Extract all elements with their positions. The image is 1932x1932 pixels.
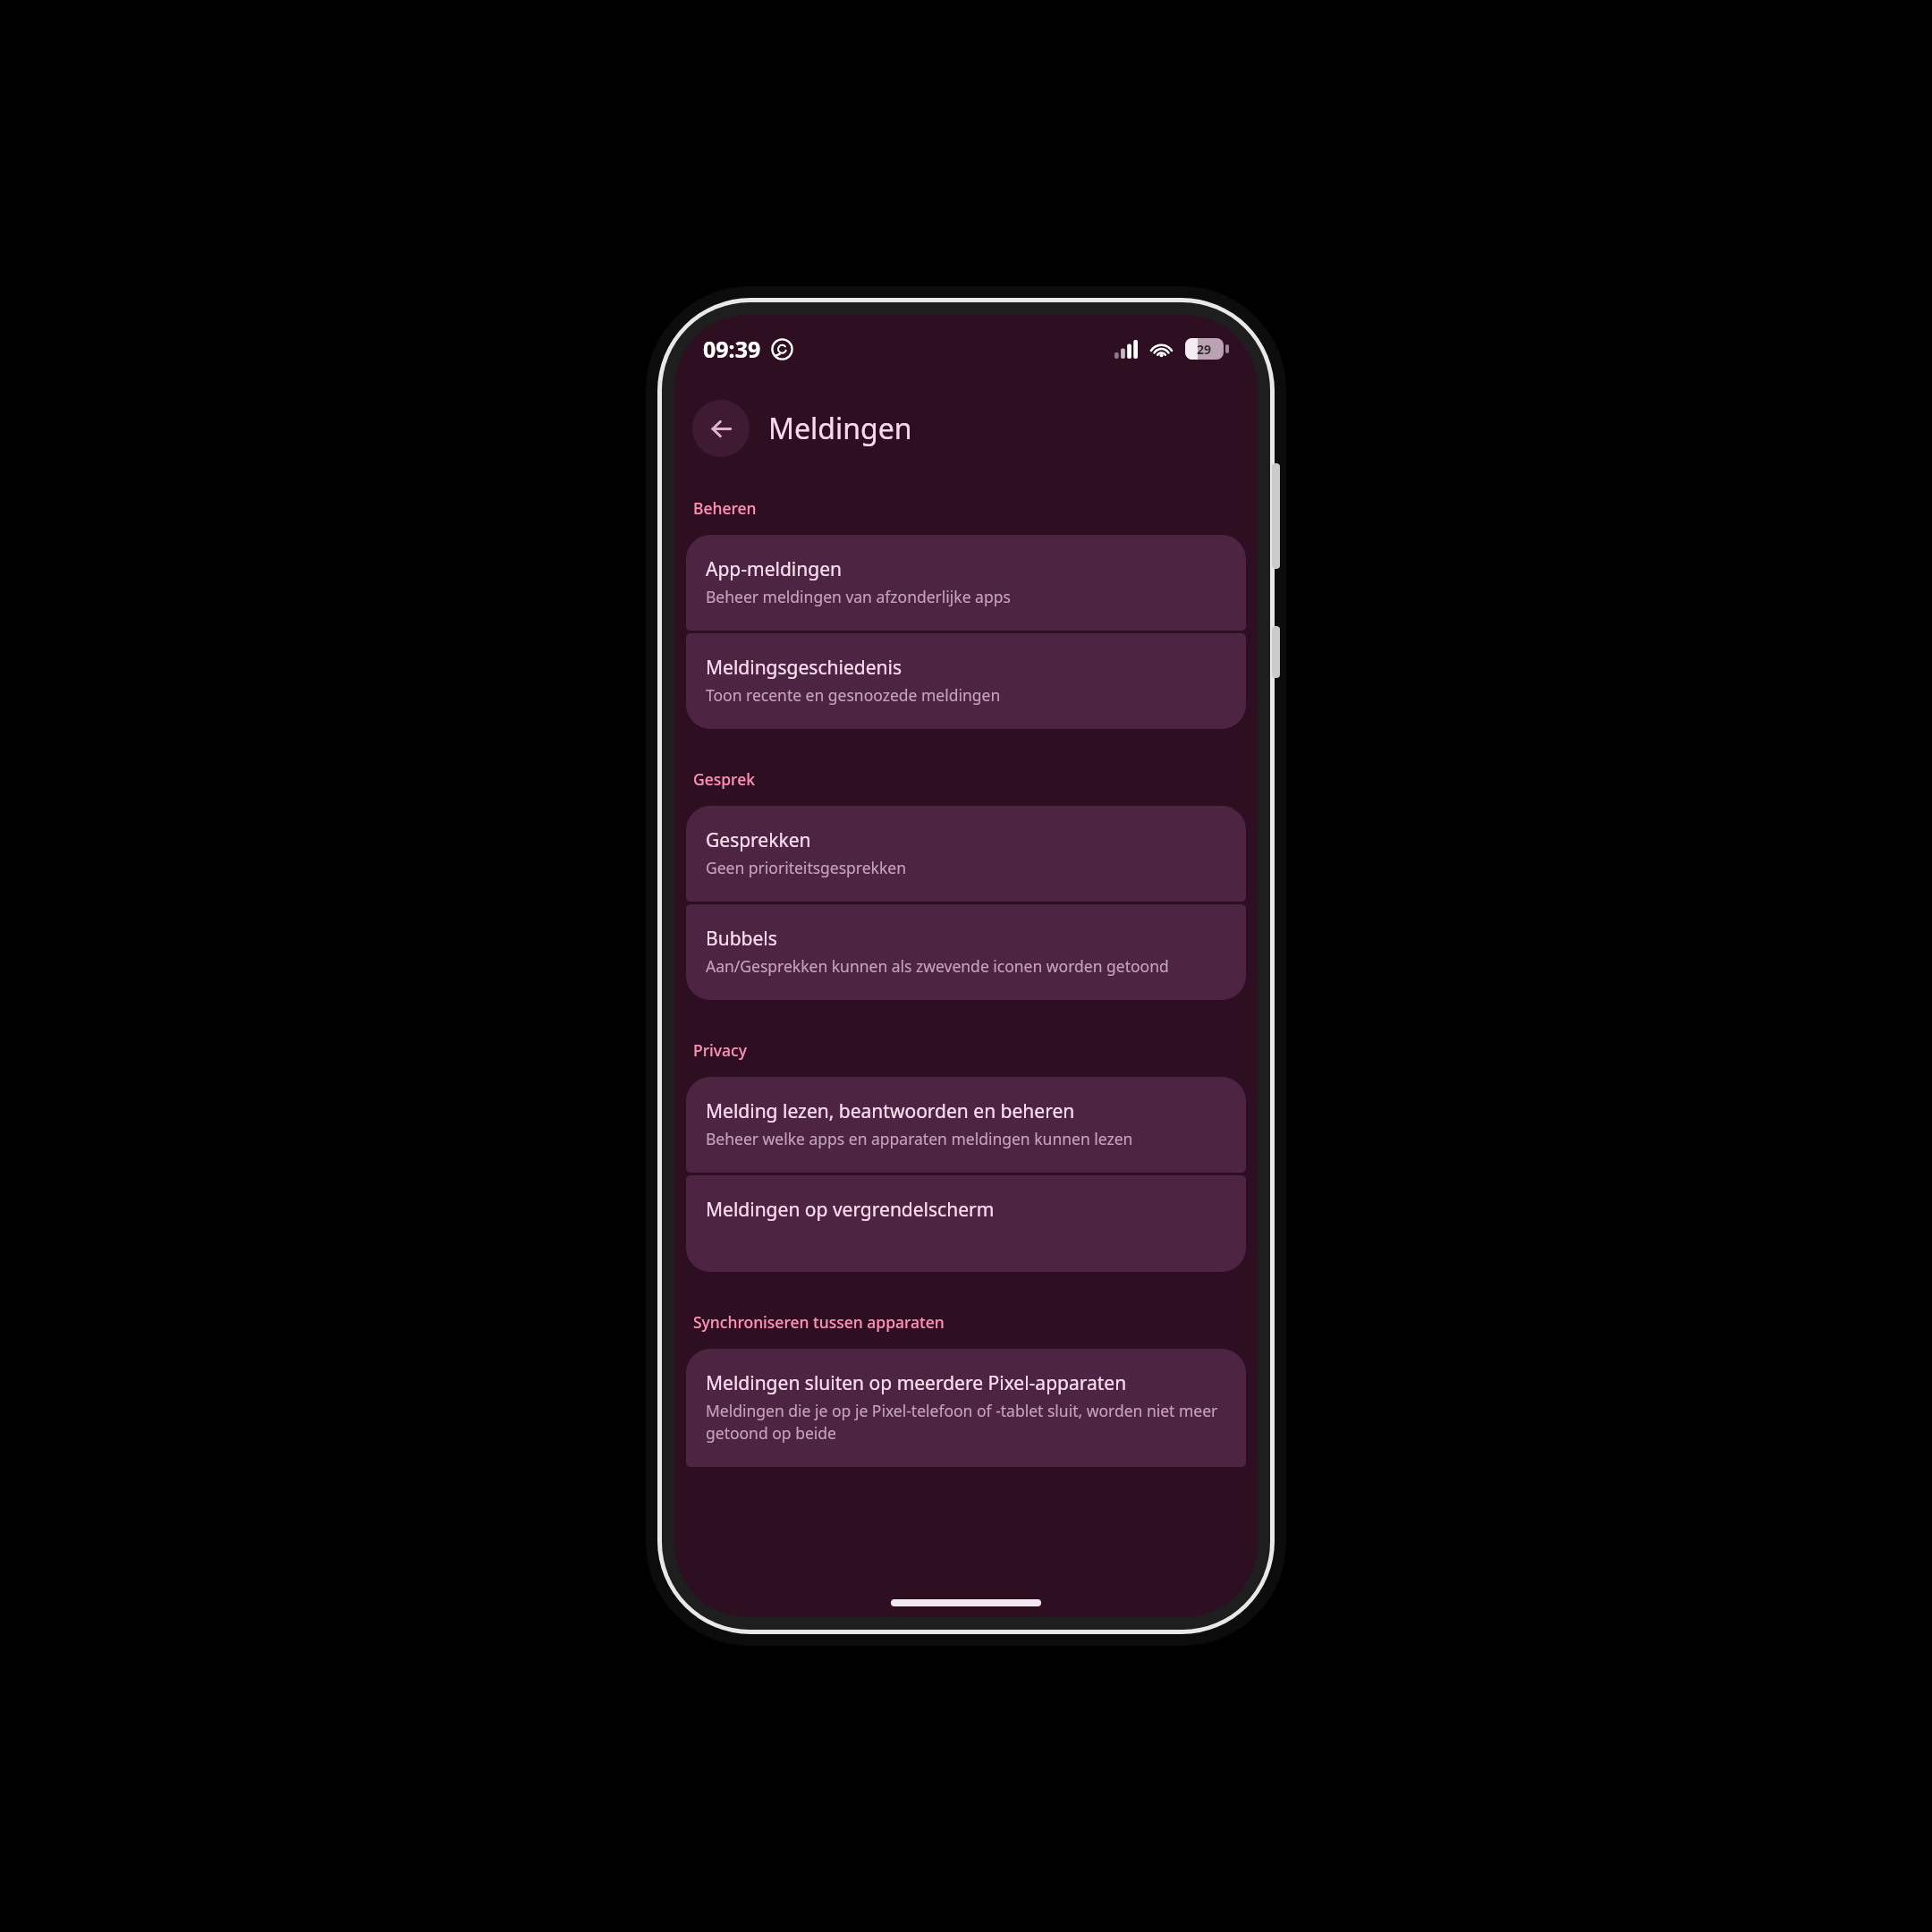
staticText: Aan/Gesprekken kunnen als zwevende icone… (706, 955, 1169, 977)
staticText: Geen prioriteitsgesprekken (706, 857, 906, 878)
staticText: Beheer welke apps en apparaten meldingen… (706, 1128, 1133, 1149)
staticText: Toon recente en gesnoozede meldingen (706, 684, 1001, 706)
staticText: Meldingen sluiten op meerdere Pixel-appa… (706, 1370, 1127, 1396)
staticText: Meldingen (768, 409, 912, 448)
staticText: Meldingen op vergrendelscherm (706, 1197, 995, 1223)
button[interactable]: Meldingen op vergrendelscherm (686, 1175, 1246, 1272)
button[interactable]: Gesprekken (686, 806, 1246, 902)
staticText: Gesprek (693, 768, 756, 790)
staticText: Privacy (693, 1039, 747, 1061)
staticText: Meldingen die je op je Pixel-telefoon of… (706, 1400, 1226, 1444)
button[interactable]: Terug (692, 400, 750, 457)
staticText: 29 (1197, 341, 1212, 358)
button[interactable]: Melding lezen, beantwoorden en beheren (686, 1077, 1246, 1173)
staticText: Melding lezen, beantwoorden en beheren (706, 1098, 1075, 1124)
staticText: Bubbels (706, 926, 777, 952)
staticText: Beheer meldingen van afzonderlijke apps (706, 586, 1011, 607)
staticText: 09:39 (703, 334, 761, 364)
staticText: App-meldingen (706, 556, 842, 582)
staticText: Gesprekken (706, 827, 811, 853)
staticText: Beheren (693, 497, 757, 519)
staticText: Meldingsgeschiedenis (706, 655, 902, 681)
button[interactable]: Meldingen sluiten op meerdere Pixel-appa… (686, 1349, 1246, 1467)
button[interactable]: App-meldingen (686, 535, 1246, 631)
button[interactable]: Meldingsgeschiedenis (686, 633, 1246, 729)
staticText: Synchroniseren tussen apparaten (693, 1311, 945, 1333)
button[interactable]: Bubbels (686, 904, 1246, 1000)
